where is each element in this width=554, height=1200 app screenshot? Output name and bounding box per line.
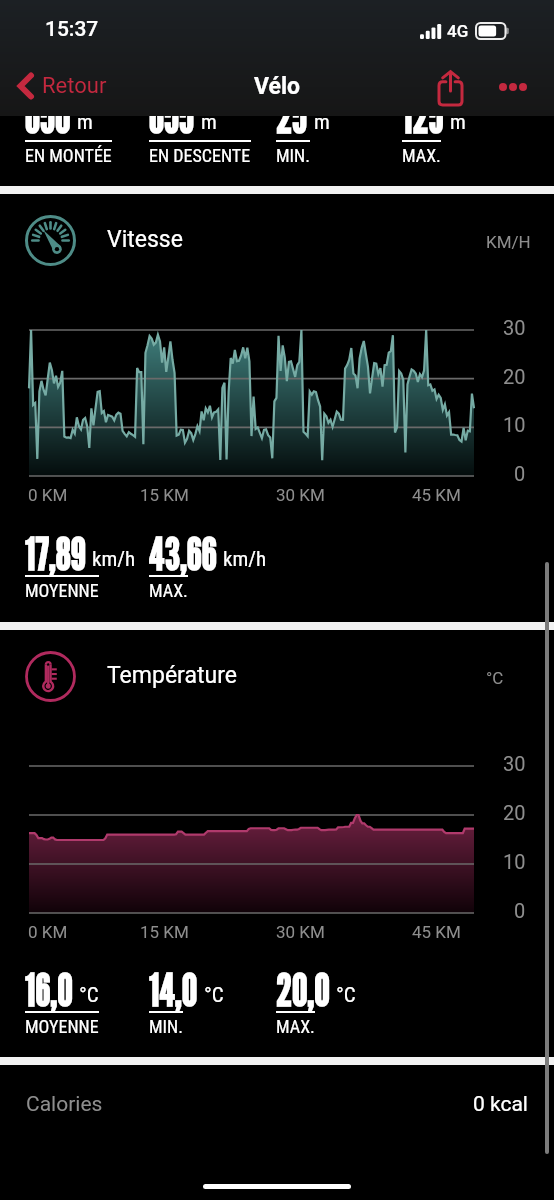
staticText: Vitesse (107, 226, 183, 253)
staticText: MAX. (149, 580, 188, 601)
staticText: 15 KM (140, 922, 189, 942)
button[interactable]: Calories (0, 1065, 554, 1143)
staticText: 25 (276, 90, 308, 143)
staticText: 30 KM (276, 922, 325, 942)
staticText: MOYENNE (25, 1016, 99, 1037)
staticText: 17,89 (25, 527, 86, 580)
staticText: Calories (26, 1092, 103, 1117)
staticText: 20 (503, 365, 526, 388)
staticText: 43,66 (149, 527, 217, 580)
staticText: 30 (503, 316, 526, 339)
staticText: MIN. (276, 145, 310, 166)
staticText: MAX. (402, 145, 441, 166)
staticText: 0 (514, 462, 526, 485)
button[interactable]: Retour (10, 62, 115, 110)
staticText: km/h (223, 547, 267, 572)
staticText: °C (486, 668, 504, 688)
staticText: 10 (503, 850, 526, 873)
staticText: MIN. (149, 1016, 183, 1037)
staticText: EN DESCENTE (149, 145, 251, 166)
staticText: Retour (42, 73, 107, 99)
staticText: 10 (503, 413, 526, 436)
staticText: 125 (402, 90, 444, 143)
staticText: MAX. (276, 1016, 315, 1037)
staticText: 655 (149, 90, 195, 143)
staticText: 45 KM (412, 922, 461, 942)
staticText: MOYENNE (25, 580, 99, 601)
staticText: 15 KM (140, 485, 189, 505)
staticText: °C (204, 983, 224, 1008)
staticText: 45 KM (412, 485, 461, 505)
staticText: 650 (25, 90, 71, 143)
staticText: °C (79, 983, 99, 1008)
staticText: °C (336, 983, 356, 1008)
staticText: 0 KM (28, 485, 68, 505)
staticText: KM/H (486, 232, 531, 252)
staticText: Température (107, 662, 237, 689)
staticText: Vélo (254, 73, 301, 100)
staticText: m (77, 110, 93, 135)
staticText: 0 KM (28, 922, 68, 942)
staticText: 0 kcal (473, 1092, 528, 1117)
staticText: km/h (92, 547, 136, 572)
staticText: m (314, 110, 330, 135)
staticText: EN MONTÉE (25, 145, 112, 166)
staticText: 20,0 (276, 963, 330, 1016)
button[interactable]: Share (425, 62, 475, 112)
staticText: 0 (514, 899, 526, 922)
staticText: 15:37 (45, 17, 99, 42)
staticText: 16,0 (25, 963, 73, 1016)
staticText: 30 (503, 752, 526, 775)
button[interactable]: More options (489, 63, 537, 111)
staticText: m (450, 110, 466, 135)
staticText: m (201, 110, 217, 135)
staticText: 14,0 (149, 963, 198, 1016)
staticText: 20 (503, 801, 526, 824)
staticText: 4G (447, 21, 469, 41)
staticText: 30 KM (276, 485, 325, 505)
